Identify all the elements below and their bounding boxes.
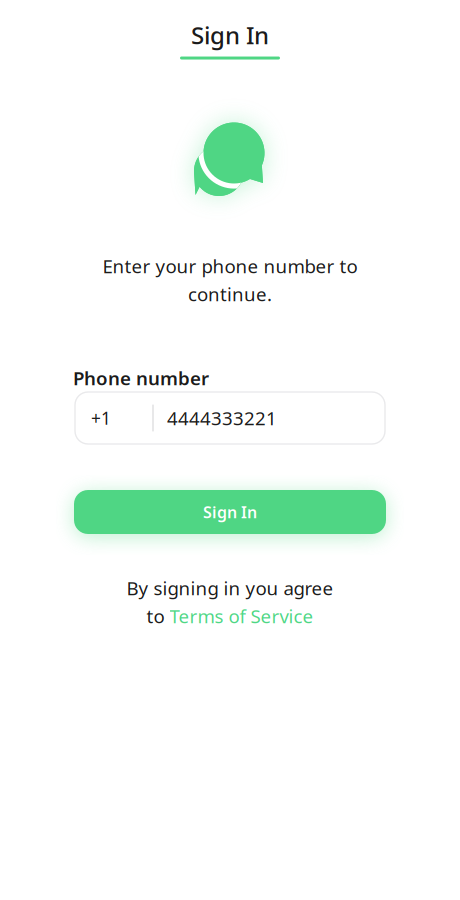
staticText: Enter your phone number to [102, 254, 357, 278]
staticText: 4444333221 [167, 406, 277, 430]
button[interactable]: Sign In [74, 490, 386, 534]
staticText: Terms of Service [169, 603, 313, 628]
staticText: Phone number [73, 366, 209, 390]
staticText: Sign In [203, 501, 257, 523]
button[interactable]: Terms of Service [169, 603, 313, 628]
staticText: +1 [91, 406, 111, 429]
staticText: Sign In [191, 19, 269, 51]
staticText: By signing in you agree [126, 576, 333, 600]
staticText: continue. [188, 281, 272, 306]
staticText: to [146, 603, 164, 628]
